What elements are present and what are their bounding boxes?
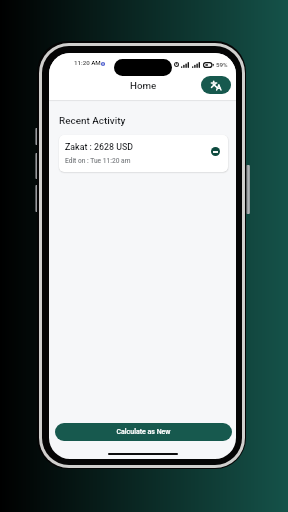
button[interactable]: Translate: [201, 76, 231, 94]
staticText: Home: [130, 80, 157, 91]
staticText: 11:20 AM: [74, 59, 101, 66]
staticText: Zakat : 2628 USD: [65, 142, 134, 152]
button[interactable]: Zakat : 2628 USD: [59, 135, 228, 172]
staticText: Edit on : Tue 11:20 am: [65, 157, 131, 165]
button[interactable]: Calculate as New: [55, 423, 232, 441]
staticText: 59%: [216, 61, 228, 68]
staticText: Calculate as New: [116, 428, 171, 436]
button[interactable]: Remove entry: [211, 147, 220, 156]
staticText: Recent Activity: [59, 115, 126, 127]
